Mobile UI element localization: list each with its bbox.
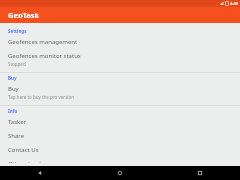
button[interactable]: Home <box>80 166 160 180</box>
button[interactable]: Other developer apps <box>0 157 240 166</box>
button[interactable]: Recents <box>160 166 240 180</box>
button[interactable]: Geofences monitor status <box>0 49 240 70</box>
staticText: Buy <box>8 75 17 81</box>
staticText: Geofences monitor status <box>8 52 81 60</box>
button[interactable]: Back <box>0 166 80 180</box>
staticText: Other developer apps <box>8 160 70 163</box>
button[interactable]: Geofences management <box>0 35 240 49</box>
staticText: GeoTask <box>8 10 40 20</box>
staticText: Tap here to buy the pro version <box>8 94 74 100</box>
staticText: Tasker <box>8 118 27 126</box>
staticText: Settings <box>8 28 27 34</box>
staticText: Share <box>8 132 25 140</box>
button[interactable]: Share <box>0 129 240 143</box>
staticText: Contact Us <box>8 146 39 154</box>
button[interactable]: Contact Us <box>0 143 240 157</box>
staticText: Buy <box>8 85 19 93</box>
staticText: 4:49 <box>230 1 238 6</box>
staticText: Geofences management <box>8 38 78 46</box>
staticText: Stopped <box>8 61 26 67</box>
button[interactable]: Buy <box>0 82 240 103</box>
staticText: Info <box>8 108 18 114</box>
button[interactable]: Tasker <box>0 115 240 129</box>
